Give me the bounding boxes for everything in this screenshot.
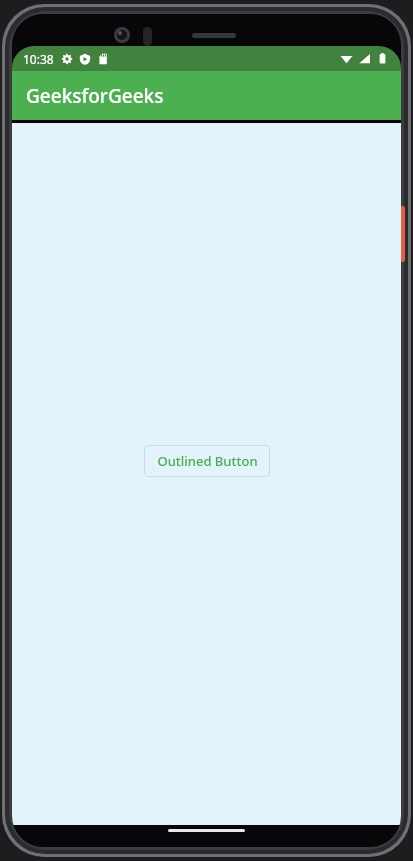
staticText: Outlined Button [157,452,258,470]
staticText: 10:38 [23,51,54,67]
staticText: GeeksforGeeks [26,83,164,109]
button[interactable]: Outlined Button [144,445,270,477]
